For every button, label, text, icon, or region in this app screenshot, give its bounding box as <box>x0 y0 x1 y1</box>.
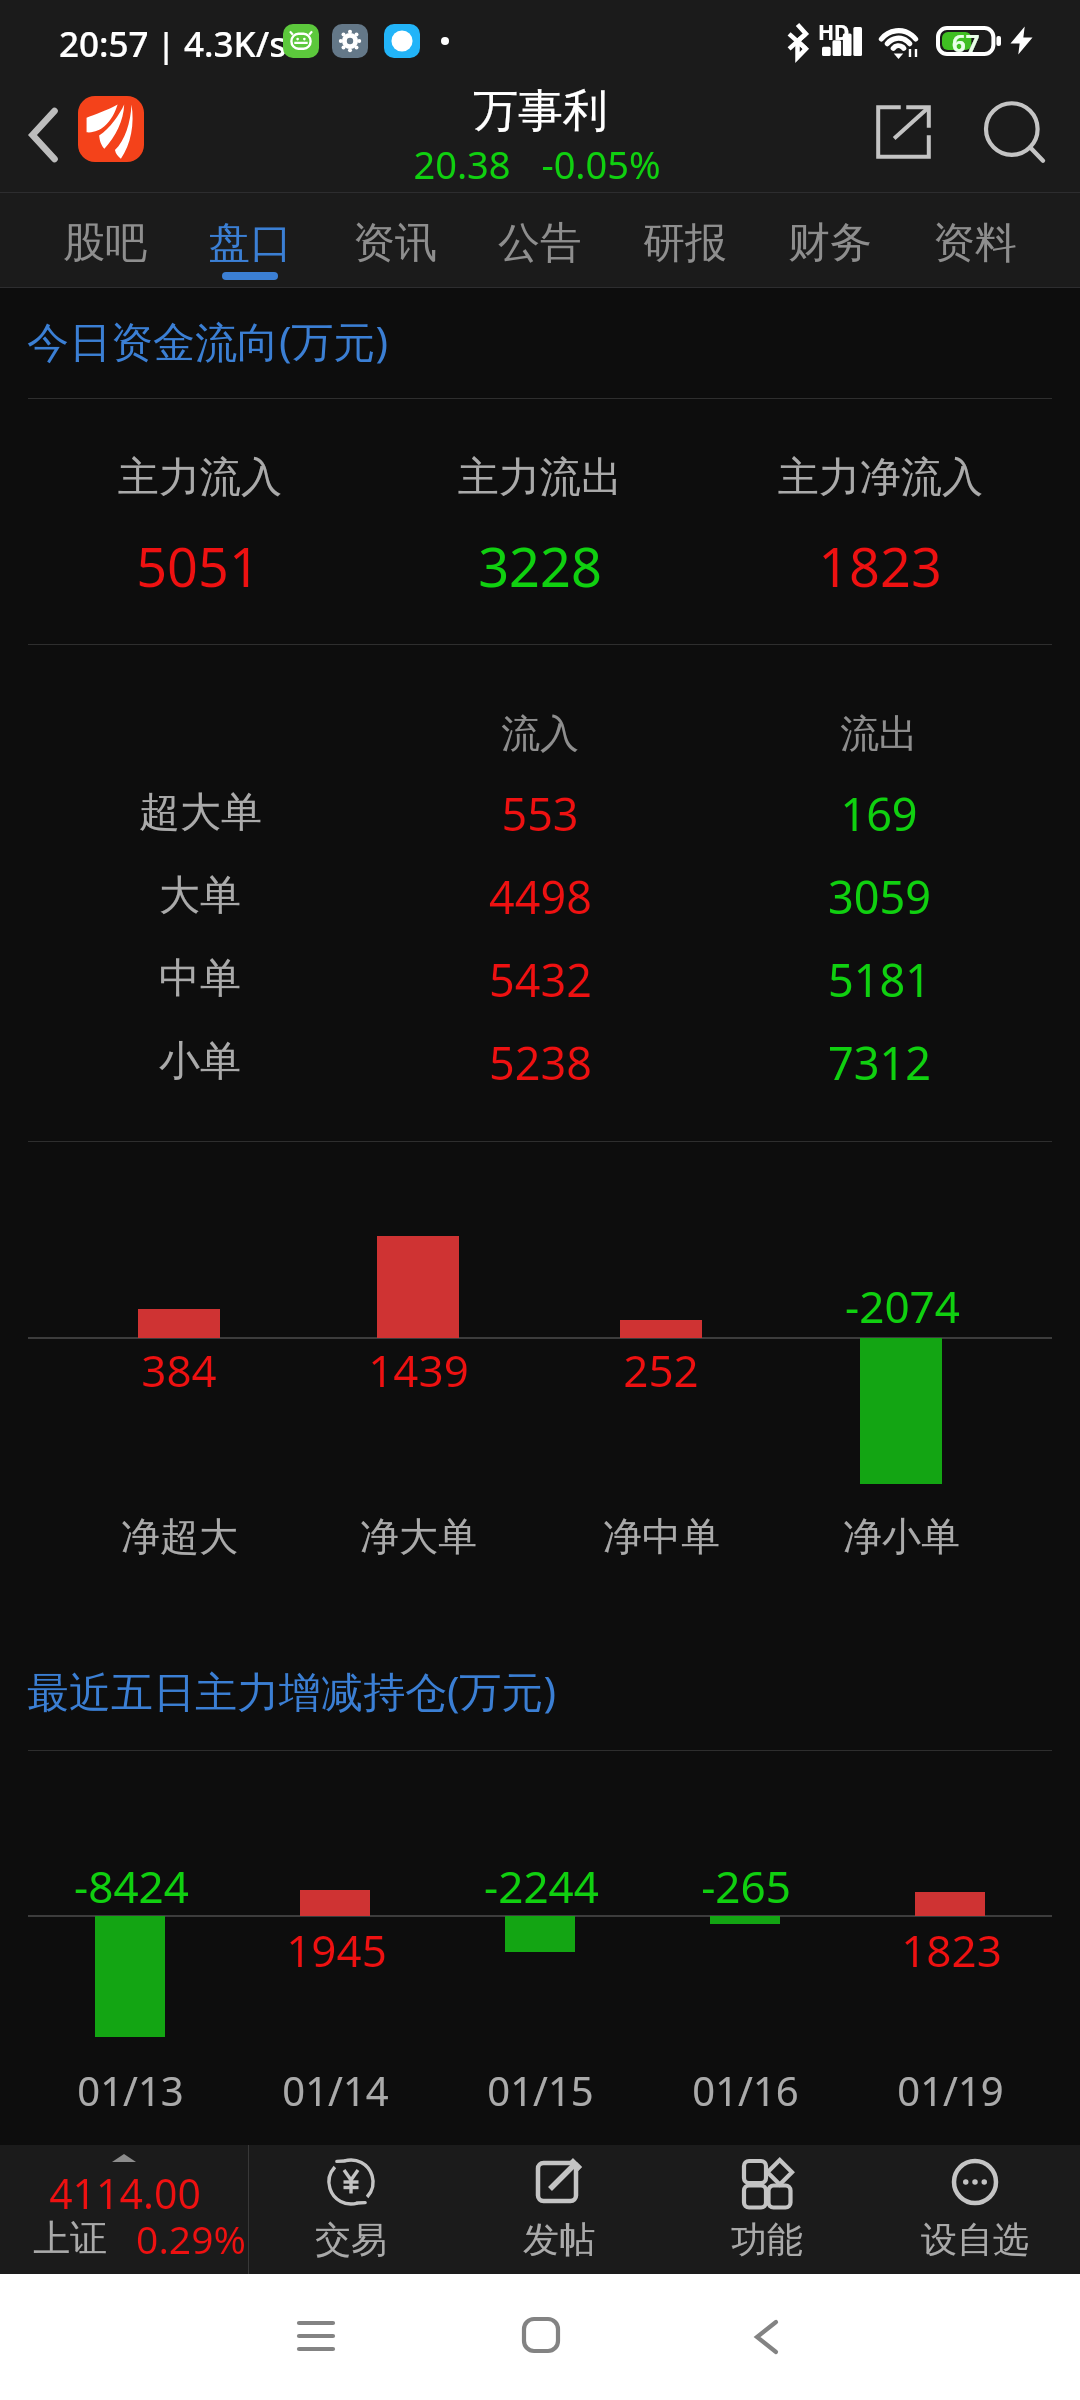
staticText: -2244 <box>484 1856 599 1916</box>
staticText: 1945 <box>286 1920 387 1980</box>
staticText: 384 <box>141 1340 217 1400</box>
staticText: 4498 <box>489 866 592 927</box>
staticText: 5051 <box>136 529 260 603</box>
staticText: 净大单 <box>360 1512 477 1561</box>
staticText: 主力流入 <box>118 452 282 504</box>
button[interactable]: 股吧 <box>33 192 177 288</box>
staticText: 上证 <box>33 2215 107 2262</box>
staticText: 553 <box>501 783 579 844</box>
staticText: 小单 <box>159 1036 241 1088</box>
button[interactable]: 财务 <box>758 192 902 288</box>
staticText: 0.29% <box>136 2212 246 2265</box>
staticText: 1823 <box>818 529 942 603</box>
button[interactable]: 上证 4114.00 0.29% <box>0 2145 248 2274</box>
staticText: 股吧 <box>63 217 147 270</box>
staticText: 万事利 <box>473 83 608 140</box>
staticText: 5432 <box>489 949 592 1010</box>
staticText: 4114.00 <box>49 2165 201 2221</box>
staticText: 7312 <box>828 1032 931 1093</box>
staticText: 功能 <box>731 2217 803 2261</box>
staticText: 资讯 <box>353 217 437 270</box>
button[interactable]: 设自选 <box>871 2145 1079 2274</box>
staticText: 01/16 <box>692 2063 799 2117</box>
button[interactable]: 公告 <box>468 192 612 288</box>
button[interactable]: 功能 <box>663 2145 871 2274</box>
staticText: 20:57 <box>59 20 149 68</box>
button[interactable]: 发帖 <box>455 2145 663 2274</box>
staticText: 净超大 <box>121 1512 238 1561</box>
staticText: 3059 <box>828 866 931 927</box>
button[interactable]: Back <box>676 2274 856 2400</box>
button[interactable]: Back <box>8 78 78 192</box>
staticText: 最近五日主力增减持仓(万元) <box>27 1662 557 1719</box>
button[interactable]: 资料 <box>903 192 1047 288</box>
staticText: -8424 <box>74 1856 189 1916</box>
staticText: 4.3K/s <box>184 20 287 68</box>
staticText: 设自选 <box>921 2217 1029 2261</box>
staticText: -0.05% <box>541 138 661 190</box>
staticText: | <box>157 22 176 67</box>
button[interactable]: Home <box>451 2274 631 2400</box>
staticText: 超大单 <box>139 787 262 839</box>
staticText: 3228 <box>478 529 602 603</box>
staticText: 67 <box>952 26 980 56</box>
staticText: -2074 <box>845 1276 960 1336</box>
staticText: 169 <box>840 783 918 844</box>
staticText: 财务 <box>788 217 872 270</box>
staticText: 20.38 <box>413 138 511 190</box>
staticText: 01/15 <box>487 2063 594 2117</box>
staticText: 盘口 <box>208 217 292 270</box>
staticText: 流入 <box>501 709 579 758</box>
staticText: 5238 <box>489 1032 592 1093</box>
staticText: 资料 <box>933 217 1017 270</box>
staticText: 净中单 <box>603 1512 720 1561</box>
staticText: 大单 <box>159 870 241 922</box>
staticText: 01/13 <box>77 2063 184 2117</box>
staticText: 01/14 <box>282 2063 389 2117</box>
staticText: 1823 <box>901 1920 1002 1980</box>
staticText: 主力净流入 <box>778 452 983 504</box>
staticText: HD <box>818 18 850 47</box>
button[interactable]: Recents <box>226 2274 406 2400</box>
button[interactable]: 研报 <box>613 192 757 288</box>
staticText: 主力流出 <box>458 452 622 504</box>
button[interactable]: 盘口 <box>178 192 322 288</box>
staticText: 发帖 <box>523 2217 595 2261</box>
staticText: 交易 <box>315 2217 387 2261</box>
button[interactable]: 资讯 <box>323 192 467 288</box>
staticText: -265 <box>701 1856 791 1916</box>
staticText: 流出 <box>840 709 918 758</box>
button[interactable]: Eastmoney <box>78 96 144 162</box>
staticText: 中单 <box>159 953 241 1005</box>
staticText: 净小单 <box>843 1512 960 1561</box>
staticText: 公告 <box>498 217 582 270</box>
button[interactable]: Search <box>957 78 1073 192</box>
staticText: 今日资金流向(万元) <box>27 312 389 369</box>
staticText: 5181 <box>828 949 931 1010</box>
staticText: 研报 <box>643 217 727 270</box>
button[interactable]: 交易 <box>247 2145 455 2274</box>
button[interactable]: Share <box>845 78 957 192</box>
staticText: 01/19 <box>897 2063 1004 2117</box>
staticText: 252 <box>623 1340 699 1400</box>
staticText: 1439 <box>368 1340 469 1400</box>
